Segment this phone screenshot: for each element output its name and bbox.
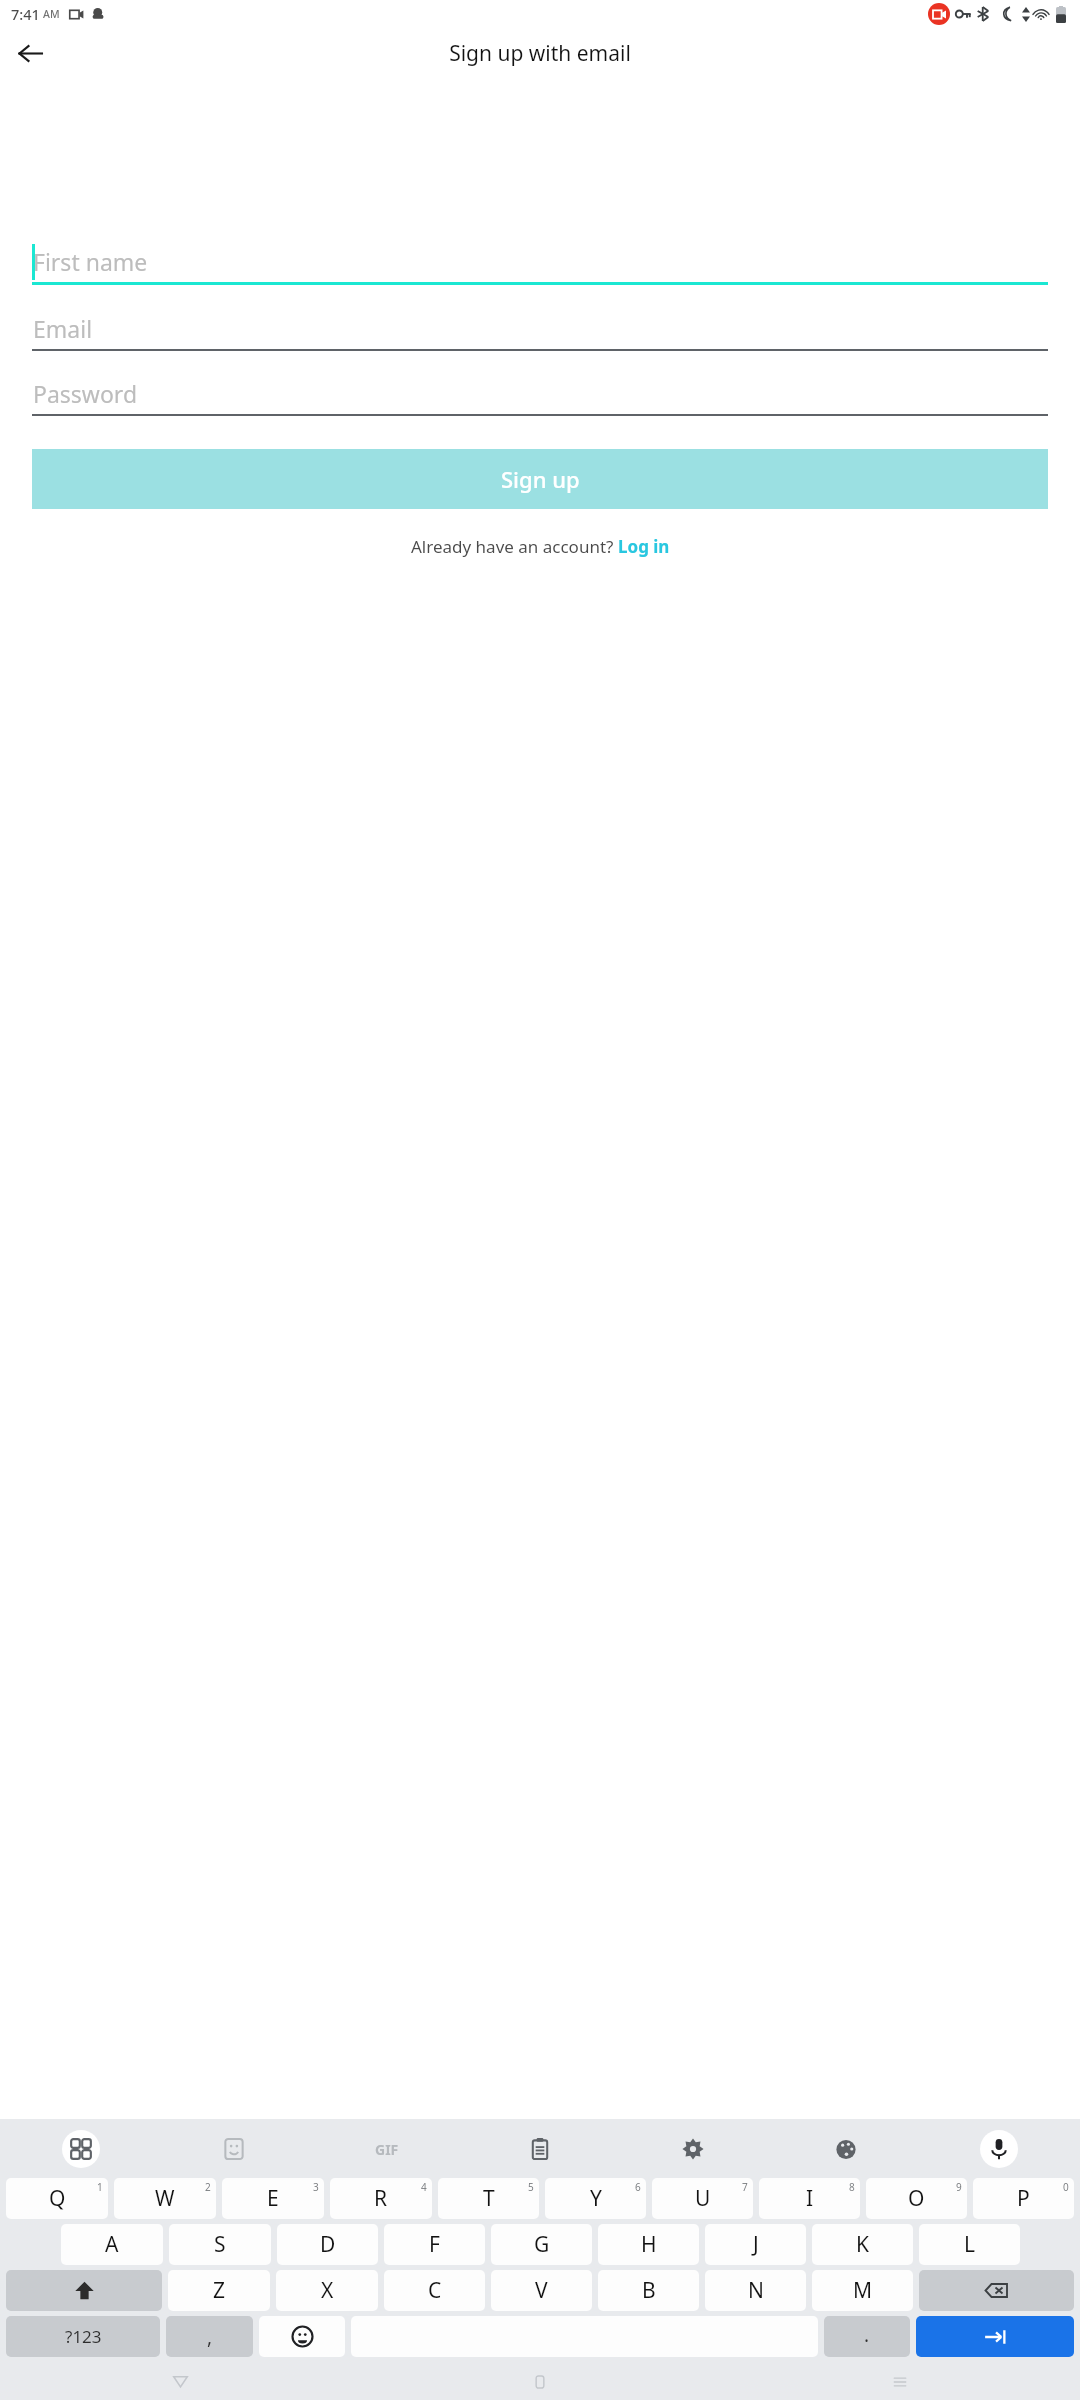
button[interactable]: First name: [32, 240, 1048, 285]
button[interactable]: F: [384, 2224, 485, 2265]
staticText: V: [535, 2276, 548, 2305]
staticText: Y: [590, 2184, 602, 2213]
button[interactable]: Stickers: [157, 2119, 310, 2178]
staticText: W: [155, 2184, 175, 2213]
staticText: 7:41: [11, 4, 40, 24]
button[interactable]: L: [919, 2224, 1020, 2265]
button[interactable]: U: [652, 2178, 753, 2219]
button[interactable]: C: [384, 2270, 485, 2311]
button[interactable]: H: [598, 2224, 699, 2265]
staticText: Sign up: [501, 464, 580, 494]
button[interactable]: Period: [824, 2316, 910, 2357]
staticText: 4: [421, 2180, 427, 2194]
button[interactable]: Sign up: [32, 449, 1048, 509]
staticText: K: [856, 2230, 869, 2259]
button[interactable]: Comma: [166, 2316, 253, 2357]
button[interactable]: A: [61, 2224, 163, 2265]
staticText: ?123: [65, 2325, 102, 2348]
button[interactable]: P: [973, 2178, 1074, 2219]
button[interactable]: G: [491, 2224, 592, 2265]
staticText: Password: [33, 378, 138, 409]
staticText: Sign up with email: [449, 39, 631, 68]
staticText: E: [267, 2184, 279, 2213]
button[interactable]: Backspace: [919, 2270, 1074, 2311]
staticText: 9: [956, 2180, 962, 2194]
staticText: 8: [849, 2180, 855, 2194]
button[interactable]: M: [812, 2270, 913, 2311]
staticText: J: [753, 2230, 759, 2259]
staticText: Z: [213, 2276, 226, 2305]
button[interactable]: Y: [545, 2178, 646, 2219]
button[interactable]: N: [705, 2270, 806, 2311]
staticText: 6: [635, 2180, 641, 2194]
button[interactable]: E: [222, 2178, 324, 2219]
staticText: 2: [205, 2180, 211, 2194]
staticText: I: [806, 2184, 814, 2213]
button[interactable]: Keyboard switch: [5, 2119, 157, 2178]
button[interactable]: I: [759, 2178, 860, 2219]
button[interactable]: Settings: [616, 2119, 769, 2178]
staticText: Q: [49, 2184, 66, 2213]
staticText: T: [483, 2184, 495, 2213]
staticText: C: [428, 2276, 442, 2305]
staticText: 0: [1063, 2180, 1069, 2194]
staticText: P: [1017, 2184, 1030, 2213]
button[interactable]: Shift: [6, 2270, 162, 2311]
staticText: First name: [33, 246, 148, 277]
button[interactable]: Q: [6, 2178, 108, 2219]
staticText: X: [321, 2276, 334, 2305]
staticText: ,: [207, 2324, 213, 2350]
staticText: 7: [742, 2180, 748, 2194]
button[interactable]: T: [438, 2178, 539, 2219]
button[interactable]: ?123: [6, 2316, 160, 2357]
staticText: R: [374, 2184, 388, 2213]
button[interactable]: S: [169, 2224, 271, 2265]
button[interactable]: Password: [32, 372, 1048, 416]
button[interactable]: B: [598, 2270, 699, 2311]
staticText: 1: [97, 2180, 103, 2194]
staticText: N: [748, 2276, 764, 2305]
button[interactable]: V: [491, 2270, 592, 2311]
button[interactable]: W: [114, 2178, 216, 2219]
staticText: A: [105, 2230, 119, 2259]
button[interactable]: K: [812, 2224, 913, 2265]
staticText: 5: [528, 2180, 534, 2194]
button[interactable]: Themes: [769, 2119, 922, 2178]
staticText: O: [908, 2184, 925, 2213]
button[interactable]: Log in: [618, 535, 670, 558]
button[interactable]: Enter: [916, 2316, 1074, 2357]
staticText: U: [695, 2184, 711, 2213]
staticText: Already have an account?: [411, 535, 618, 558]
staticText: .: [864, 2322, 870, 2348]
button[interactable]: Back: [6, 29, 54, 77]
staticText: L: [964, 2230, 976, 2259]
button[interactable]: Email: [32, 307, 1048, 351]
staticText: 3: [313, 2180, 319, 2194]
staticText: B: [642, 2276, 656, 2305]
staticText: G: [534, 2230, 550, 2259]
staticText: S: [214, 2230, 226, 2259]
button[interactable]: GIF: [310, 2119, 463, 2178]
button[interactable]: Emoji: [259, 2316, 345, 2357]
staticText: D: [320, 2230, 336, 2259]
staticText: Log in: [618, 535, 670, 558]
button[interactable]: J: [705, 2224, 806, 2265]
button[interactable]: Voice input: [922, 2119, 1075, 2178]
button[interactable]: X: [276, 2270, 378, 2311]
staticText: Email: [33, 313, 93, 344]
staticText: M: [853, 2276, 873, 2305]
staticText: GIF: [375, 2140, 399, 2159]
button[interactable]: D: [277, 2224, 378, 2265]
staticText: F: [429, 2230, 440, 2259]
staticText: AM: [43, 7, 60, 21]
staticText: H: [641, 2230, 657, 2259]
button[interactable]: O: [866, 2178, 967, 2219]
button[interactable]: R: [330, 2178, 432, 2219]
button[interactable]: Clipboard: [463, 2119, 616, 2178]
button[interactable]: Z: [168, 2270, 270, 2311]
